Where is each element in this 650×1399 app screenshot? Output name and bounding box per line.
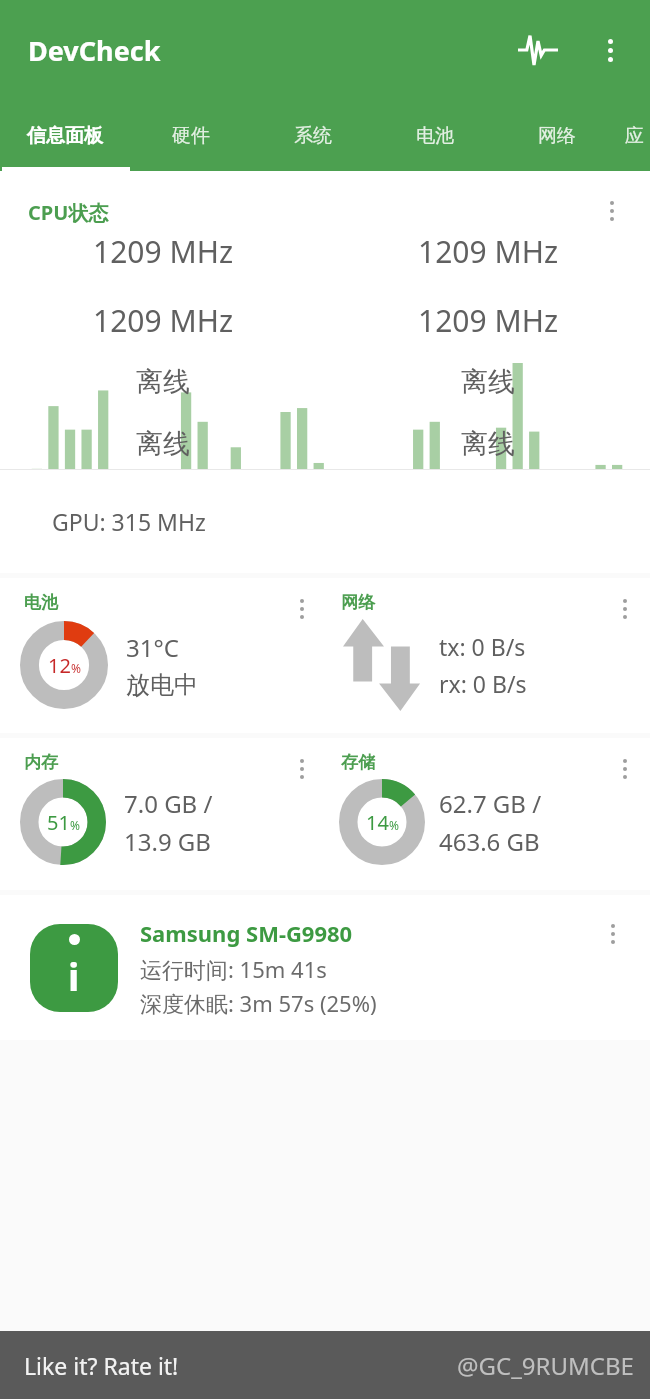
staticText: 51 <box>47 809 70 836</box>
staticText: GPU: 315 MHz <box>52 506 206 537</box>
button[interactable]: 存储 <box>325 738 650 890</box>
staticText: @GC_9RUMCBE <box>457 1349 634 1382</box>
button[interactable]: Memory options <box>283 750 321 788</box>
staticText: 电池 <box>416 124 454 148</box>
button[interactable]: 信息面板 <box>0 100 130 171</box>
staticText: 14 <box>366 809 389 836</box>
staticText: 电池 <box>24 592 58 613</box>
staticText: 系统 <box>294 124 332 148</box>
staticText: tx: 0 B/s <box>439 631 526 662</box>
button[interactable]: More options <box>588 28 632 72</box>
button[interactable]: CPU options <box>592 191 632 231</box>
button[interactable]: Device options <box>594 915 632 953</box>
button[interactable]: Battery options <box>283 590 321 628</box>
staticText: 离线 <box>461 427 515 461</box>
button[interactable]: Storage options <box>606 750 644 788</box>
button[interactable]: Like it? Rate it! <box>0 1331 650 1399</box>
button[interactable]: Network options <box>606 590 644 628</box>
staticText: 离线 <box>136 365 190 399</box>
staticText: 运行时间: 15m 41s <box>140 954 327 984</box>
staticText: 深度休眠: 3m 57s (25%) <box>140 988 377 1018</box>
staticText: 31°C <box>126 631 179 664</box>
staticText: i <box>68 950 80 1002</box>
staticText: 离线 <box>461 365 515 399</box>
button[interactable]: 电池 <box>0 578 325 733</box>
staticText: 7.0 GB / <box>124 787 213 820</box>
staticText: 1209 MHz <box>93 231 233 272</box>
staticText: 放电中 <box>126 670 198 700</box>
staticText: 62.7 GB / <box>439 787 542 820</box>
staticText: % <box>71 660 81 676</box>
staticText: CPU状态 <box>28 199 109 226</box>
staticText: 1209 MHz <box>93 300 233 341</box>
staticText: 13.9 GB <box>124 825 211 858</box>
button[interactable]: 应 <box>618 100 650 171</box>
staticText: 网络 <box>341 592 375 613</box>
button[interactable]: i <box>0 895 650 1040</box>
button[interactable]: CPU状态 <box>0 171 650 573</box>
staticText: 应 <box>625 124 644 148</box>
button[interactable]: 硬件 <box>130 100 252 171</box>
staticText: 内存 <box>24 752 58 773</box>
staticText: 信息面板 <box>27 124 103 148</box>
staticText: % <box>70 817 80 833</box>
staticText: 存储 <box>341 752 375 773</box>
button[interactable]: 系统 <box>252 100 374 171</box>
button[interactable]: 内存 <box>0 738 325 890</box>
staticText: 硬件 <box>172 124 210 148</box>
staticText: 离线 <box>136 427 190 461</box>
staticText: DevCheck <box>28 32 161 69</box>
button[interactable]: 网络 <box>496 100 618 171</box>
staticText: 1209 MHz <box>418 231 558 272</box>
button[interactable]: 电池 <box>374 100 496 171</box>
staticText: Samsung SM-G9980 <box>140 918 353 948</box>
button[interactable]: Monitor <box>514 26 562 74</box>
staticText: % <box>389 817 399 833</box>
staticText: 12 <box>48 652 71 679</box>
staticText: 463.6 GB <box>439 825 540 858</box>
button[interactable]: 网络 <box>325 578 650 733</box>
staticText: 1209 MHz <box>418 300 558 341</box>
staticText: Like it? Rate it! <box>24 1350 179 1381</box>
staticText: rx: 0 B/s <box>439 668 527 699</box>
staticText: 网络 <box>538 124 576 148</box>
